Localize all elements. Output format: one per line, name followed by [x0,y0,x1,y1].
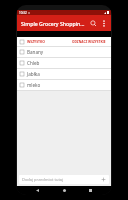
button[interactable]: Banany [17,47,111,57]
staticText: Simple Grocery Shopping List [21,20,87,27]
staticText: Chleb [27,60,40,66]
button[interactable]: Dodaj przedmiot tutaj [19,175,98,184]
button[interactable]: Home [59,186,70,195]
staticText: mleko [27,82,41,88]
button[interactable]: More options [99,18,109,28]
staticText: ODZNACZ WSZYSTKIE [72,40,106,44]
staticText: Banany [27,49,44,55]
staticText: WSZYSTKO [27,39,45,44]
button[interactable]: mleko [17,80,111,90]
staticText: Dodaj przedmiot tutaj [22,177,64,182]
staticText: 10:32 [19,11,27,15]
button[interactable]: Jabłka [17,69,111,79]
button[interactable]: Recent apps [85,186,96,195]
button[interactable]: Chleb [17,58,111,68]
button[interactable]: Add item [98,175,109,184]
button[interactable]: Back [32,186,43,195]
staticText: Jabłka [27,71,40,77]
button[interactable]: Search [87,17,99,29]
button[interactable]: WSZYSTKO [17,37,111,46]
